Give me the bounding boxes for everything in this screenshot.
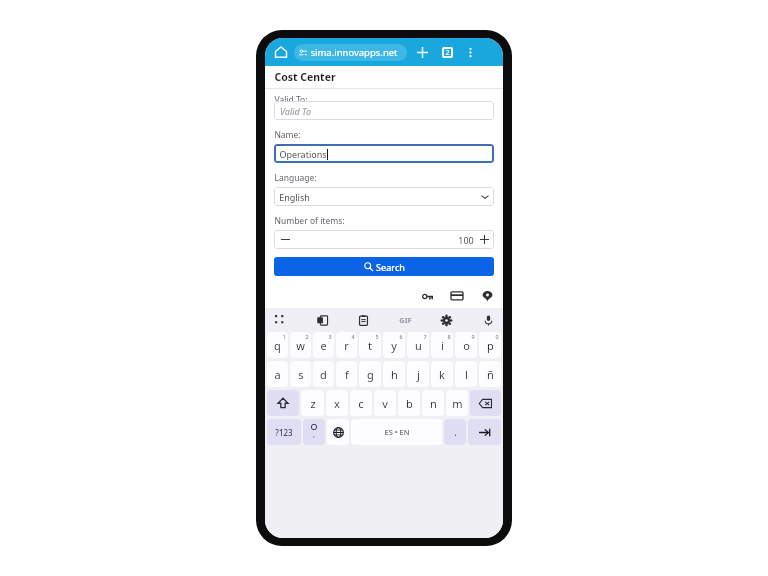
staticText: y <box>391 338 397 353</box>
staticText: 1 <box>282 333 286 340</box>
staticText: 2 <box>445 48 450 58</box>
staticText: q <box>274 338 281 353</box>
staticText: z <box>310 396 316 411</box>
staticText: k <box>439 367 445 382</box>
button[interactable]: Clipboard <box>352 309 374 331</box>
button[interactable]: Addresses <box>477 286 497 306</box>
button[interactable]: Keyboard switch <box>269 309 291 331</box>
staticText: Valid To <box>280 105 312 117</box>
button[interactable]: Search <box>274 257 494 276</box>
staticText: j <box>417 367 420 382</box>
staticText: a <box>274 367 281 382</box>
staticText: 2 <box>305 333 309 340</box>
staticText: 7 <box>423 333 427 340</box>
staticText: 9 <box>471 333 475 340</box>
button[interactable]: u <box>407 332 429 358</box>
staticText: p <box>487 338 494 353</box>
button[interactable]: Shift <box>267 390 299 416</box>
staticText: r <box>344 338 349 353</box>
staticText: . <box>454 425 457 439</box>
button[interactable]: Valid To <box>274 101 494 120</box>
staticText: ES • EN <box>384 427 410 437</box>
staticText: 4 <box>351 333 355 340</box>
staticText: h <box>391 367 398 382</box>
button[interactable]: t <box>359 332 381 358</box>
staticText: f <box>345 367 349 382</box>
button[interactable]: q <box>267 332 288 358</box>
staticText: c <box>358 396 364 411</box>
staticText: s <box>298 367 304 382</box>
button[interactable]: sima.innovapps.net <box>294 44 407 61</box>
button[interactable]: g <box>359 361 381 387</box>
button[interactable]: v <box>374 390 396 416</box>
staticText: t <box>368 338 372 353</box>
button[interactable]: p <box>479 332 501 358</box>
button[interactable]: Passwords <box>417 286 437 306</box>
button[interactable]: Home <box>272 43 290 61</box>
button[interactable]: k <box>431 361 453 387</box>
button[interactable]: z <box>301 390 324 416</box>
staticText: 0 <box>495 333 499 340</box>
button[interactable]: b <box>398 390 420 416</box>
button[interactable]: l <box>455 361 477 387</box>
button[interactable]: Voice input <box>477 309 499 331</box>
button[interactable]: m <box>446 390 468 416</box>
staticText: g <box>367 367 374 382</box>
staticText: 6 <box>399 333 403 340</box>
button[interactable]: New tab <box>413 43 431 61</box>
button[interactable]: Change language <box>327 419 349 445</box>
button[interactable]: f <box>336 361 357 387</box>
button[interactable]: GIF <box>394 309 416 331</box>
staticText: m <box>452 396 463 411</box>
button[interactable]: c <box>350 390 372 416</box>
button[interactable]: y <box>383 332 405 358</box>
staticText: Name: <box>274 129 301 141</box>
staticText: 3 <box>328 333 332 340</box>
button[interactable]: More options <box>462 44 478 60</box>
button[interactable]: w <box>290 332 311 358</box>
staticText: Operations <box>279 148 327 160</box>
button[interactable]: ñ <box>479 361 501 387</box>
button[interactable]: Backspace <box>470 390 501 416</box>
button[interactable]: Increase <box>474 230 494 249</box>
staticText: b <box>406 396 413 411</box>
button[interactable]: Tabs: 2 <box>438 43 456 61</box>
button[interactable]: h <box>383 361 405 387</box>
button[interactable]: Decrease <box>274 230 296 249</box>
button[interactable]: a <box>267 361 288 387</box>
staticText: n <box>430 396 437 411</box>
button[interactable]: r <box>336 332 357 358</box>
staticText: ñ <box>487 367 494 382</box>
staticText: Cost Center <box>274 70 336 84</box>
staticText: Language: <box>274 172 317 184</box>
button[interactable]: n <box>422 390 444 416</box>
button[interactable]: o <box>455 332 477 358</box>
button[interactable]: ?123 <box>267 419 301 445</box>
staticText: l <box>465 367 468 382</box>
button[interactable]: x <box>326 390 348 416</box>
button[interactable]: s <box>290 361 311 387</box>
staticText: English <box>279 191 310 203</box>
button[interactable]: i <box>431 332 453 358</box>
button[interactable]: j <box>407 361 429 387</box>
button[interactable]: Stickers <box>311 309 333 331</box>
staticText: x <box>334 396 340 411</box>
staticText: u <box>415 338 422 353</box>
staticText: v <box>382 396 388 411</box>
button[interactable]: ES • EN <box>351 419 442 445</box>
button[interactable]: Operations <box>274 144 494 163</box>
button[interactable]: Emoji and comma <box>303 419 325 445</box>
button[interactable]: Next field <box>468 419 501 445</box>
button[interactable]: d <box>313 361 334 387</box>
staticText: ?123 <box>275 427 293 438</box>
staticText: GIF <box>399 315 412 325</box>
button[interactable]: Settings <box>435 309 457 331</box>
staticText: 8 <box>447 333 451 340</box>
button[interactable]: English <box>274 187 494 206</box>
staticText: o <box>463 338 470 353</box>
button[interactable]: e <box>313 332 334 358</box>
staticText: 100 <box>458 234 474 246</box>
button[interactable]: . <box>444 419 466 445</box>
button[interactable]: Payment methods <box>447 286 467 306</box>
staticText: i <box>441 338 444 353</box>
